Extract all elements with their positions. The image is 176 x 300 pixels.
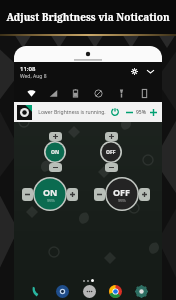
button[interactable]: Wifi: [20, 84, 42, 102]
button[interactable]: Brightness OFF widget: [100, 132, 122, 172]
button[interactable]: Do not disturb: [87, 84, 110, 102]
button[interactable]: Lower Brightness is running.: [14, 102, 162, 122]
button[interactable]: Phone: [22, 282, 49, 300]
button[interactable]: Brightness OFF widget: [94, 177, 150, 211]
button[interactable]: Increase brightness: [146, 105, 160, 119]
button[interactable]: Messages: [76, 282, 102, 300]
button[interactable]: Flashlight: [110, 84, 133, 102]
button[interactable]: Expand: [144, 65, 156, 77]
staticText: Adjust Brightness via Notication: [6, 10, 170, 24]
button[interactable]: Decrease brightness: [122, 105, 136, 119]
staticText: Wed, Aug 8: [20, 73, 47, 80]
staticText: ON: [43, 186, 58, 198]
button[interactable]: Brightness ON widget: [22, 177, 78, 211]
button[interactable]: Settings: [128, 282, 154, 300]
button[interactable]: Signal: [42, 84, 64, 102]
button[interactable]: Camera: [49, 282, 76, 300]
staticText: 11:08: [20, 65, 36, 73]
staticText: OFF: [106, 149, 116, 156]
button[interactable]: Settings: [128, 65, 140, 77]
staticText: 95%: [118, 198, 126, 203]
button[interactable]: Rotate: [133, 84, 156, 102]
button[interactable]: Chrome: [102, 282, 128, 300]
staticText: 95%: [136, 109, 146, 116]
button[interactable]: Battery: [64, 84, 87, 102]
staticText: Lower Brightness is running.: [36, 109, 108, 116]
staticText: ON: [51, 149, 60, 156]
staticText: OFF: [113, 186, 131, 198]
button[interactable]: Brightness ON widget: [44, 132, 66, 172]
staticText: 95%: [47, 198, 55, 203]
button[interactable]: Power: [108, 105, 122, 119]
